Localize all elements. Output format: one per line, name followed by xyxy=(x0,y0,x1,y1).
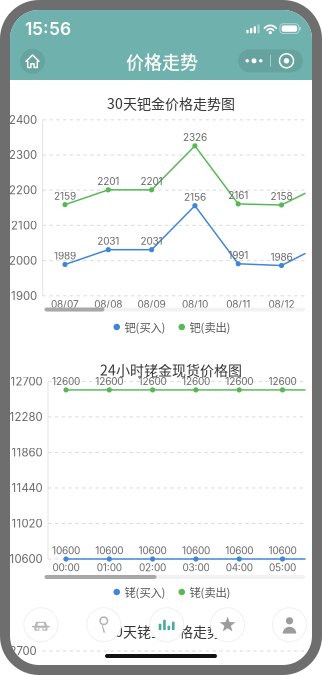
staticText: 01:00 xyxy=(97,561,122,574)
staticText: 2326 xyxy=(183,131,207,143)
button[interactable]: Profile xyxy=(269,605,309,645)
staticText: 2201 xyxy=(141,175,163,187)
staticText: 1989 xyxy=(54,250,76,262)
staticText: 08/09 xyxy=(138,298,166,310)
staticText: 12600 xyxy=(225,375,253,387)
staticText: 10600 xyxy=(268,544,296,557)
staticText: 08/07 xyxy=(51,298,79,310)
staticText: 12700 xyxy=(10,374,42,388)
staticText: 08/08 xyxy=(94,298,122,310)
staticText: 2100 xyxy=(11,218,37,232)
button[interactable]: Price trends xyxy=(147,605,187,645)
staticText: 10600 xyxy=(9,552,42,566)
staticText: 1900 xyxy=(11,289,37,303)
staticText: 2201 xyxy=(97,175,119,187)
staticText: 11020 xyxy=(11,517,42,530)
staticText: 1986 xyxy=(270,251,292,263)
staticText: 08/10 xyxy=(182,298,208,310)
staticText: 10600 xyxy=(139,544,167,557)
staticText: 12700 xyxy=(4,644,36,658)
staticText: 2161 xyxy=(228,189,248,201)
staticText: 2156 xyxy=(184,191,206,203)
button[interactable]: Vehicles xyxy=(21,605,61,645)
staticText: 03:00 xyxy=(182,561,209,574)
staticText: 02:00 xyxy=(139,561,166,574)
staticText: 30天铑金价格走势图 xyxy=(107,621,235,641)
staticText: 2031 xyxy=(141,235,163,247)
button[interactable]: More options xyxy=(238,49,270,72)
staticText: 11440 xyxy=(11,481,42,495)
staticText: 钯(卖出) xyxy=(189,319,230,335)
staticText: 10600 xyxy=(225,544,253,557)
staticText: 10600 xyxy=(52,544,80,557)
button[interactable]: Metals xyxy=(84,605,124,645)
staticText: 04:00 xyxy=(226,561,253,574)
staticText: 2400 xyxy=(9,113,37,127)
staticText: 15:56 xyxy=(25,18,71,39)
staticText: 12600 xyxy=(52,375,80,387)
staticText: 12600 xyxy=(268,375,296,387)
staticText: 08/12 xyxy=(268,298,294,310)
staticText: 10600 xyxy=(95,544,123,557)
staticText: 12600 xyxy=(95,375,123,387)
staticText: 05:00 xyxy=(269,561,296,574)
staticText: 钯(买入) xyxy=(124,319,165,335)
staticText: 11860 xyxy=(11,446,42,459)
staticText: 2000 xyxy=(9,254,37,267)
staticText: 12600 xyxy=(182,375,210,387)
staticText: 08/11 xyxy=(226,298,250,310)
button[interactable]: Favourites xyxy=(208,605,248,645)
staticText: 2300 xyxy=(9,148,37,162)
staticText: 12600 xyxy=(139,375,167,387)
staticText: 价格走势 xyxy=(126,48,198,74)
staticText: 铑(卖出) xyxy=(189,584,230,600)
staticText: 2158 xyxy=(270,190,292,202)
button[interactable]: Mini program menu xyxy=(270,49,303,72)
staticText: 10600 xyxy=(182,544,210,557)
staticText: 1991 xyxy=(228,249,248,261)
staticText: 24小时铑金现货价格图 xyxy=(100,359,242,380)
button[interactable]: Home xyxy=(12,41,52,81)
staticText: 2200 xyxy=(9,183,37,197)
staticText: 铑(买入) xyxy=(124,584,165,600)
staticText: 12280 xyxy=(9,410,42,424)
staticText: 30天钯金价格走势图 xyxy=(107,93,235,113)
staticText: 2159 xyxy=(54,190,76,202)
staticText: 00:00 xyxy=(52,561,79,574)
staticText: 2031 xyxy=(97,235,119,247)
